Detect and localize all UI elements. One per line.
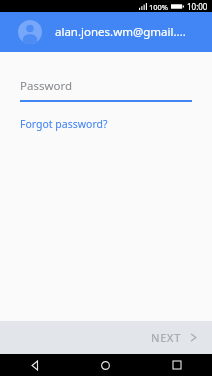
- button[interactable]: Forgot password?: [20, 117, 108, 131]
- button[interactable]: Password: [20, 78, 192, 102]
- button[interactable]: NEXT: [137, 321, 212, 354]
- staticText: alan.jones.wm@gmail....: [55, 24, 186, 40]
- button[interactable]: Back: [0, 354, 70, 376]
- staticText: 10:00: [187, 1, 208, 12]
- button[interactable]: Home: [70, 354, 141, 376]
- staticText: Password: [20, 78, 73, 94]
- staticText: Forgot password?: [20, 117, 108, 131]
- staticText: NEXT: [151, 330, 181, 345]
- button[interactable]: alan.jones.wm@gmail....: [0, 12, 212, 52]
- staticText: 100%: [149, 2, 169, 12]
- button[interactable]: Recent apps: [141, 354, 212, 376]
